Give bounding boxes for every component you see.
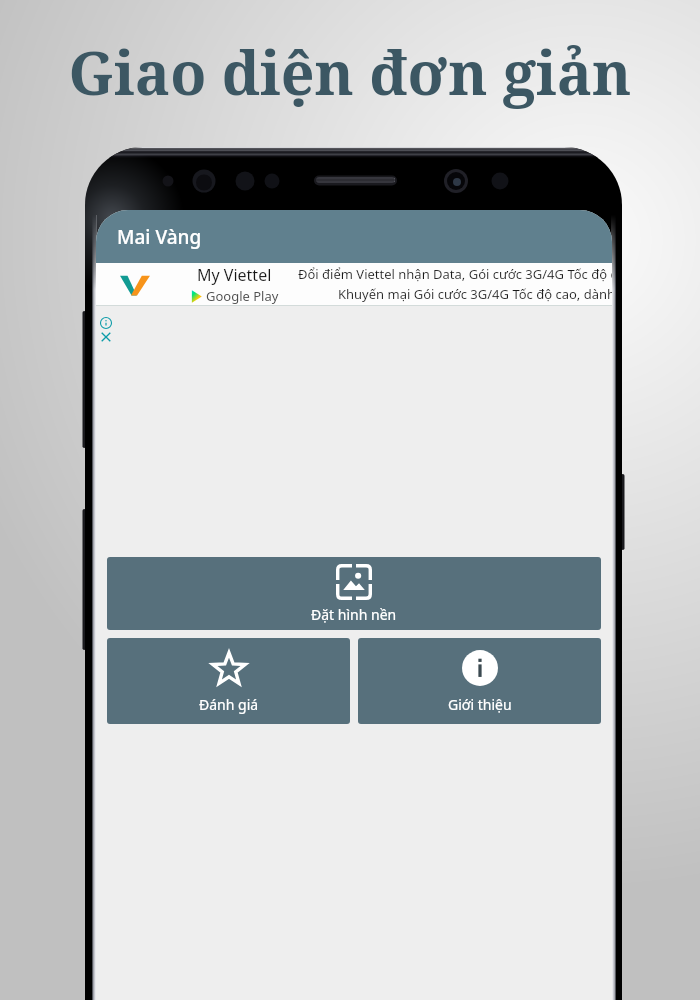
- staticText: Khuyến mại Gói cước 3G/4G Tốc độ cao, dà…: [338, 285, 612, 303]
- button[interactable]: Ad info: [99, 316, 113, 330]
- button[interactable]: Đánh giá: [107, 638, 350, 724]
- button[interactable]: My Viettel: [96, 263, 612, 305]
- staticText: Giao diện đơn giản: [0, 32, 700, 112]
- staticText: Google Play: [206, 287, 279, 305]
- staticText: Đặt hình nền: [311, 605, 397, 624]
- staticText: Đánh giá: [199, 695, 259, 714]
- button[interactable]: Close ad: [99, 330, 113, 344]
- staticText: My Viettel: [197, 264, 272, 286]
- staticText: Giới thiệu: [448, 695, 512, 714]
- button[interactable]: Mai Vàng: [96, 210, 612, 263]
- button[interactable]: Giới thiệu: [358, 638, 601, 724]
- staticText: Đổi điểm Viettel nhận Data, Gói cước 3G/…: [298, 265, 612, 283]
- staticText: Mai Vàng: [117, 224, 202, 250]
- button[interactable]: Đặt hình nền: [107, 557, 601, 630]
